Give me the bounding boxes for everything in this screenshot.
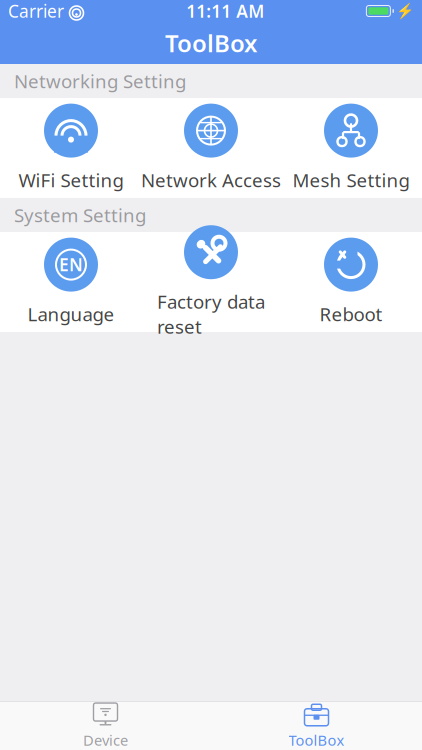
staticText: Language: [27, 302, 114, 326]
button[interactable]: ToolBox: [211, 702, 422, 750]
staticText: Mesh Setting: [292, 168, 409, 192]
button[interactable]: WiFi Setting: [1, 98, 141, 198]
staticText: Carrier: [8, 0, 64, 22]
staticText: ToolBox: [165, 27, 257, 59]
staticText: System Setting: [14, 203, 146, 227]
staticText: EN: [59, 253, 83, 276]
staticText: ToolBox: [288, 730, 344, 750]
button[interactable]: EN: [1, 232, 141, 332]
staticText: Reboot: [319, 302, 382, 326]
staticText: Factory data reset: [157, 289, 265, 339]
staticText: WiFi Setting: [18, 168, 123, 192]
staticText: Network Access: [141, 168, 281, 192]
staticText: ⚡: [396, 3, 414, 19]
staticText: 11:11 AM: [186, 0, 264, 22]
button[interactable]: Network Access: [141, 98, 281, 198]
button[interactable]: Device: [0, 702, 211, 750]
staticText: Device: [83, 730, 128, 750]
staticText: Networking Setting: [14, 69, 186, 93]
button[interactable]: Factory data reset: [141, 232, 281, 332]
button[interactable]: Reboot: [281, 232, 421, 332]
button[interactable]: Mesh Setting: [281, 98, 421, 198]
